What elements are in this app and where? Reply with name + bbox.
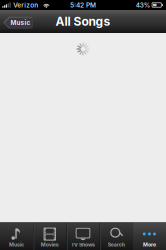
staticText: TV Shows bbox=[71, 241, 95, 248]
button[interactable]: TV Shows bbox=[66, 222, 100, 250]
staticText: 5:42 PM bbox=[70, 1, 96, 9]
button[interactable]: Music bbox=[0, 222, 33, 250]
staticText: Movies bbox=[41, 241, 59, 248]
staticText: Verizon bbox=[13, 1, 38, 9]
button[interactable]: Movies bbox=[33, 222, 66, 250]
staticText: Music bbox=[10, 19, 30, 26]
staticText: Search bbox=[108, 241, 125, 248]
staticText: Music bbox=[9, 241, 24, 248]
staticText: 43% bbox=[136, 1, 150, 9]
staticText: All Songs bbox=[55, 14, 110, 29]
button[interactable]: Music bbox=[3, 17, 33, 28]
staticText: More bbox=[143, 241, 156, 248]
button[interactable]: More bbox=[133, 222, 166, 250]
button[interactable]: Search bbox=[100, 222, 133, 250]
